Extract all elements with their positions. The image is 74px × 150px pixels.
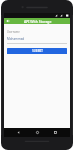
button[interactable]: Home bbox=[33, 128, 42, 137]
staticText: API With Storage bbox=[24, 19, 52, 24]
staticText: SUBMIT bbox=[32, 49, 43, 53]
staticText: Username bbox=[7, 30, 20, 34]
button[interactable]: SUBMIT bbox=[7, 48, 67, 54]
button[interactable]: Back bbox=[14, 128, 23, 137]
staticText: Mohammad bbox=[7, 37, 25, 41]
button[interactable]: Back bbox=[4, 18, 11, 24]
button[interactable]: Recent apps bbox=[51, 128, 60, 137]
